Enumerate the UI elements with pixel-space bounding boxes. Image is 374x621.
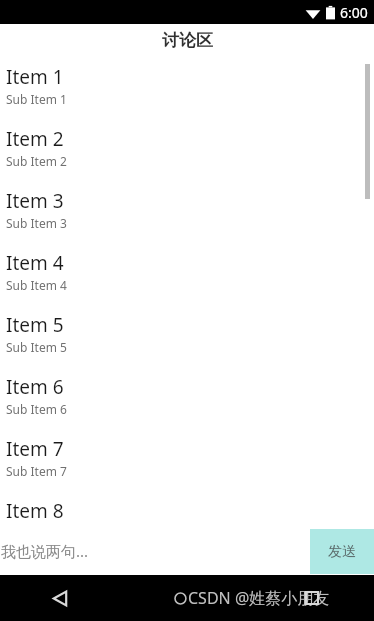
- staticText: Item 7: [6, 436, 64, 462]
- button[interactable]: Item 8: [0, 496, 374, 527]
- button[interactable]: 发送: [310, 529, 374, 574]
- button[interactable]: Item 7: [0, 434, 374, 496]
- staticText: 发送: [328, 543, 356, 561]
- button[interactable]: Item 5: [0, 310, 374, 372]
- staticText: Sub Item 4: [6, 277, 67, 293]
- staticText: Item 3: [6, 188, 64, 214]
- staticText: Item 4: [6, 250, 64, 276]
- button[interactable]: Item 4: [0, 248, 374, 310]
- staticText: Sub Item 7: [6, 463, 67, 479]
- staticText: 我也说两句...: [1, 541, 89, 561]
- staticText: Sub Item 1: [6, 91, 67, 107]
- staticText: Item 6: [6, 374, 64, 400]
- staticText: Sub Item 5: [6, 339, 67, 355]
- staticText: Sub Item 3: [6, 215, 67, 231]
- button[interactable]: Back: [42, 580, 78, 616]
- button[interactable]: Item 6: [0, 372, 374, 434]
- button[interactable]: Item 3: [0, 186, 374, 248]
- staticText: Sub Item 6: [6, 401, 67, 417]
- button[interactable]: Item 2: [0, 124, 374, 186]
- staticText: 讨论区: [162, 30, 213, 51]
- staticText: Item 5: [6, 312, 64, 338]
- staticText: Item 1: [6, 64, 64, 90]
- button[interactable]: Home: [297, 583, 327, 613]
- staticText: 6:00: [340, 3, 368, 22]
- staticText: Item 2: [6, 126, 64, 152]
- staticText: CSDN @姓蔡小朋友: [188, 587, 330, 609]
- button[interactable]: Item 1: [0, 62, 374, 124]
- staticText: Sub Item 2: [6, 153, 67, 169]
- staticText: Item 8: [6, 498, 64, 524]
